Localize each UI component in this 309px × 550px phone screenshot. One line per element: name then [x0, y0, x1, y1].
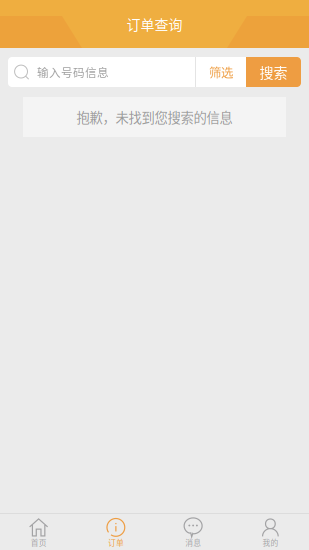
button[interactable]: 首页 [0, 514, 77, 550]
staticText: 订单 [108, 537, 124, 548]
staticText: 输入号码信息 [37, 64, 109, 80]
staticText: 搜索 [259, 62, 287, 82]
button[interactable]: 搜索 [246, 57, 301, 87]
staticText: 首页 [31, 537, 47, 548]
button[interactable]: 订单 [77, 514, 154, 550]
button[interactable]: 我的 [232, 514, 309, 550]
staticText: 我的 [262, 537, 278, 548]
staticText: 订单查询 [126, 14, 182, 34]
button[interactable]: 筛选 [196, 57, 246, 87]
staticText: 筛选 [209, 63, 233, 81]
staticText: 消息 [185, 537, 201, 548]
button[interactable]: 消息 [154, 514, 232, 550]
staticText: 抱歉，未找到您搜索的信息 [76, 107, 232, 127]
